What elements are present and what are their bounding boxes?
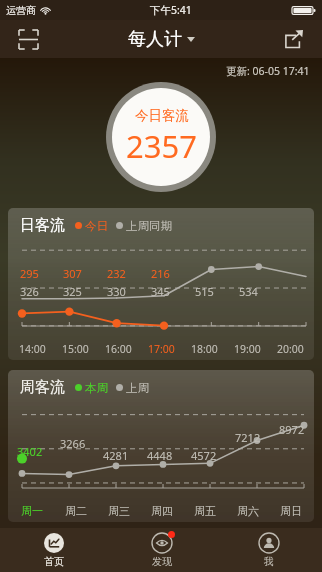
- staticText: 4281: [103, 448, 129, 463]
- staticText: 周客流: [20, 378, 65, 397]
- staticText: 2357: [126, 125, 197, 167]
- staticText: 更新: 06-05 17:41: [226, 64, 310, 78]
- staticText: 15:00: [62, 342, 89, 356]
- staticText: 3266: [60, 436, 86, 451]
- staticText: 日客流: [20, 216, 65, 235]
- staticText: 今日: [85, 219, 108, 233]
- staticText: 232: [107, 266, 126, 281]
- staticText: 16:00: [105, 342, 132, 356]
- staticText: 326: [20, 284, 39, 299]
- button[interactable]: 今日客流: [106, 82, 216, 192]
- button[interactable]: Scan: [8, 20, 48, 58]
- staticText: 18:00: [191, 342, 218, 356]
- staticText: 上周: [126, 381, 149, 395]
- staticText: 7212: [235, 430, 261, 445]
- button[interactable]: 周客流: [8, 370, 314, 522]
- staticText: 首页: [44, 555, 64, 568]
- staticText: 周二: [65, 504, 87, 518]
- staticText: 330: [107, 284, 126, 299]
- staticText: 345: [151, 284, 170, 299]
- staticText: 216: [151, 266, 170, 281]
- staticText: 下午5:41: [150, 3, 192, 17]
- staticText: 发现: [152, 555, 172, 568]
- staticText: 周五: [194, 504, 216, 518]
- staticText: 周六: [237, 504, 259, 518]
- staticText: 19:00: [234, 342, 261, 356]
- staticText: 上周同期: [126, 219, 172, 233]
- staticText: 运营商: [6, 4, 36, 17]
- staticText: 534: [239, 284, 258, 299]
- button[interactable]: 首页: [0, 528, 108, 572]
- staticText: 17:00: [148, 342, 175, 356]
- staticText: 今日客流: [135, 107, 189, 124]
- staticText: 周三: [108, 504, 130, 518]
- button[interactable]: 日客流: [8, 208, 314, 360]
- staticText: 周一: [21, 504, 43, 518]
- staticText: 周日: [280, 504, 302, 518]
- staticText: 307: [63, 266, 82, 281]
- staticText: 周四: [151, 504, 173, 518]
- staticText: 14:00: [19, 342, 46, 356]
- staticText: 3402: [17, 444, 43, 459]
- staticText: 295: [20, 266, 39, 281]
- staticText: 20:00: [277, 342, 304, 356]
- staticText: 本周: [85, 381, 108, 395]
- button[interactable]: 我: [215, 528, 322, 572]
- button[interactable]: 每人计: [128, 28, 195, 51]
- button[interactable]: Share: [274, 20, 314, 58]
- staticText: 4572: [191, 448, 217, 463]
- staticText: 每人计: [128, 28, 182, 51]
- button[interactable]: 发现: [108, 528, 215, 572]
- staticText: 8972: [279, 422, 305, 437]
- staticText: 515: [195, 284, 214, 299]
- staticText: 4448: [147, 448, 173, 463]
- staticText: 我: [264, 555, 274, 568]
- staticText: 325: [63, 284, 82, 299]
